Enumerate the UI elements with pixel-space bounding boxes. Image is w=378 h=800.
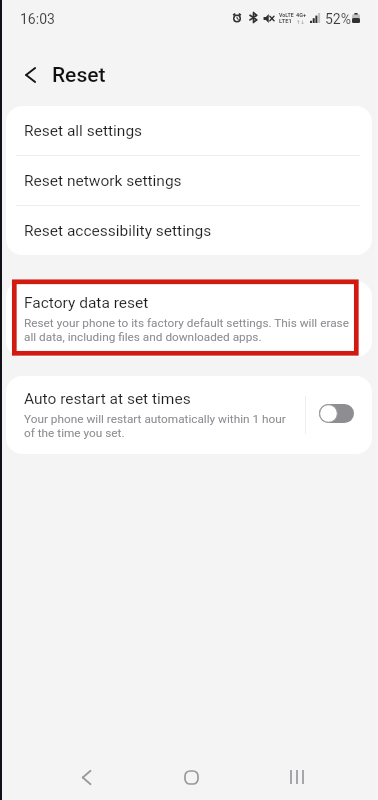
- staticText: Reset network settings: [24, 172, 182, 190]
- button[interactable]: Reset all settings: [6, 106, 372, 155]
- staticText: Reset all settings: [24, 122, 143, 140]
- button[interactable]: Reset network settings: [6, 156, 372, 205]
- button[interactable]: Auto restart at set times, off: [306, 376, 372, 454]
- button[interactable]: Back: [33, 754, 139, 800]
- button[interactable]: Reset accessibility settings: [6, 206, 372, 255]
- button[interactable]: Factory data reset: [6, 281, 372, 357]
- staticText: 52%: [325, 11, 351, 27]
- button[interactable]: Recent apps: [244, 754, 349, 800]
- staticText: ↑↓: [296, 19, 305, 25]
- button[interactable]: Navigate up: [12, 57, 48, 93]
- staticText: 4G+: [296, 12, 307, 19]
- staticText: Reset: [52, 63, 106, 88]
- staticText: Reset your phone to its factory default …: [24, 316, 360, 344]
- button[interactable]: Home: [139, 754, 244, 800]
- staticText: Your phone will restart automatically wi…: [24, 412, 292, 440]
- staticText: Factory data reset: [24, 294, 149, 312]
- staticText: 16:03: [20, 11, 55, 27]
- staticText: Reset accessibility settings: [24, 222, 212, 240]
- staticText: Auto restart at set times: [24, 390, 191, 408]
- staticText: LTE1: [279, 18, 292, 25]
- staticText: VoLTE: [279, 12, 294, 18]
- button[interactable]: Auto restart at set times: [6, 377, 305, 454]
